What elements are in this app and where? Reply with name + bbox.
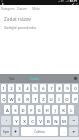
staticText: G — [37, 107, 41, 113]
button[interactable]: D — [20, 105, 26, 114]
button[interactable]: J — [52, 105, 58, 114]
button[interactable]: Save — [70, 2, 75, 5]
button[interactable]: Zadejte poznámku — [4, 24, 76, 30]
button[interactable]: K — [60, 105, 66, 114]
staticText: Zadat — [30, 76, 40, 81]
button[interactable]: Místo — [29, 5, 43, 12]
button[interactable]: Tab — [0, 74, 23, 83]
button[interactable]: 6 — [40, 84, 46, 92]
button[interactable]: 9 — [64, 84, 70, 92]
staticText: U — [49, 96, 53, 102]
staticText: D — [21, 107, 25, 113]
staticText: Čeština — [34, 130, 45, 134]
staticText: T — [34, 96, 37, 102]
button[interactable]: W — [8, 94, 14, 103]
button[interactable]: S — [12, 105, 18, 114]
button[interactable]: V — [37, 116, 43, 125]
button[interactable]: Keyboard options — [71, 74, 79, 83]
button[interactable]: L — [68, 105, 74, 114]
staticText: 1 — [2, 85, 5, 91]
staticText: X — [23, 118, 26, 124]
staticText: C — [31, 118, 34, 124]
button[interactable]: Delete — [69, 116, 78, 125]
button[interactable]: N — [53, 116, 59, 125]
staticText: Zadejte poznámku — [4, 25, 37, 30]
button[interactable]: A — [4, 105, 10, 114]
staticText: F — [30, 107, 33, 113]
button[interactable]: Change keyboard — [12, 127, 19, 136]
staticText: 7 — [50, 85, 53, 91]
button[interactable]: T — [32, 94, 38, 103]
staticText: Místo — [32, 7, 40, 11]
button[interactable]: E — [16, 94, 22, 103]
button[interactable]: G — [36, 105, 42, 114]
button[interactable]: 5 — [32, 84, 38, 92]
button[interactable]: R — [24, 94, 30, 103]
button[interactable]: Sym — [1, 127, 10, 136]
staticText: R — [26, 96, 29, 102]
staticText: Tab — [9, 76, 15, 81]
staticText: L — [70, 107, 73, 113]
button[interactable]: 7 — [48, 84, 54, 92]
staticText: 5 — [34, 85, 37, 91]
staticText: N — [54, 118, 58, 124]
staticText: K — [62, 107, 65, 113]
button[interactable]: . — [60, 127, 67, 136]
button[interactable]: Navigate up — [0, 2, 5, 5]
button[interactable]: M — [61, 116, 67, 125]
staticText: S — [14, 107, 17, 113]
button[interactable]: Kategorie — [1, 5, 15, 12]
staticText: Datum — [17, 7, 27, 11]
staticText: Zadat název — [4, 16, 32, 23]
staticText: 2 — [10, 85, 13, 91]
staticText: H — [45, 107, 49, 113]
button[interactable]: Čeština — [21, 127, 58, 136]
staticText: W — [9, 96, 14, 102]
button[interactable]: More options — [75, 2, 79, 5]
staticText: 3 — [18, 85, 21, 91]
staticText: Q — [2, 96, 6, 102]
staticText: . — [63, 129, 65, 134]
button[interactable]: O — [64, 94, 70, 103]
button[interactable]: Enter — [69, 127, 78, 136]
button[interactable]: C — [29, 116, 35, 125]
staticText: Y — [15, 118, 18, 124]
button[interactable]: Z — [40, 94, 46, 103]
staticText: 6 — [42, 85, 45, 91]
staticText: Z — [42, 96, 45, 102]
staticText: E — [18, 96, 21, 102]
button[interactable]: U — [48, 94, 54, 103]
button[interactable]: 1 — [1, 84, 6, 92]
staticText: M — [62, 118, 66, 124]
staticText: 8 — [58, 85, 61, 91]
staticText: A — [6, 107, 9, 113]
button[interactable]: B — [45, 116, 51, 125]
button[interactable]: H — [44, 105, 50, 114]
button[interactable]: F — [28, 105, 34, 114]
button[interactable]: 3 — [16, 84, 22, 92]
button[interactable]: 4 — [24, 84, 30, 92]
staticText: Sym — [3, 130, 9, 134]
button[interactable]: 2 — [8, 84, 14, 92]
button[interactable]: X — [21, 116, 27, 125]
staticText: V — [39, 118, 42, 124]
button[interactable]: Q — [1, 94, 6, 103]
button[interactable]: Datum — [15, 5, 29, 12]
staticText: Kategorie — [1, 7, 15, 11]
staticText: 9 — [66, 85, 69, 91]
button[interactable]: 8 — [56, 84, 62, 92]
staticText: B — [47, 118, 50, 124]
staticText: 4 — [26, 85, 29, 91]
staticText: P — [74, 96, 77, 102]
button[interactable]: Shift — [1, 116, 11, 125]
button[interactable]: I — [56, 94, 62, 103]
staticText: 0 — [74, 85, 77, 91]
button[interactable]: Y — [13, 116, 19, 125]
staticText: I — [58, 96, 60, 102]
button[interactable]: P — [72, 94, 78, 103]
button[interactable]: Zadat název — [4, 16, 76, 23]
button[interactable]: Zadat — [23, 74, 47, 83]
button[interactable]: 0 — [72, 84, 78, 92]
staticText: O — [65, 96, 69, 102]
